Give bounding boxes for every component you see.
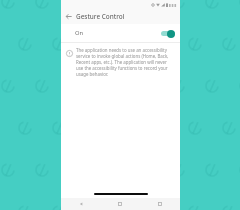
button[interactable]: Back	[61, 198, 100, 210]
button[interactable]: On	[61, 24, 180, 42]
button[interactable]: Home	[100, 198, 140, 210]
staticText: Gesture Control	[76, 12, 125, 21]
button[interactable]: Navigate up	[61, 9, 76, 24]
staticText: The application needs to use an accessib…	[76, 47, 175, 77]
button[interactable]: Recent apps	[140, 198, 180, 210]
staticText: On	[75, 29, 84, 37]
